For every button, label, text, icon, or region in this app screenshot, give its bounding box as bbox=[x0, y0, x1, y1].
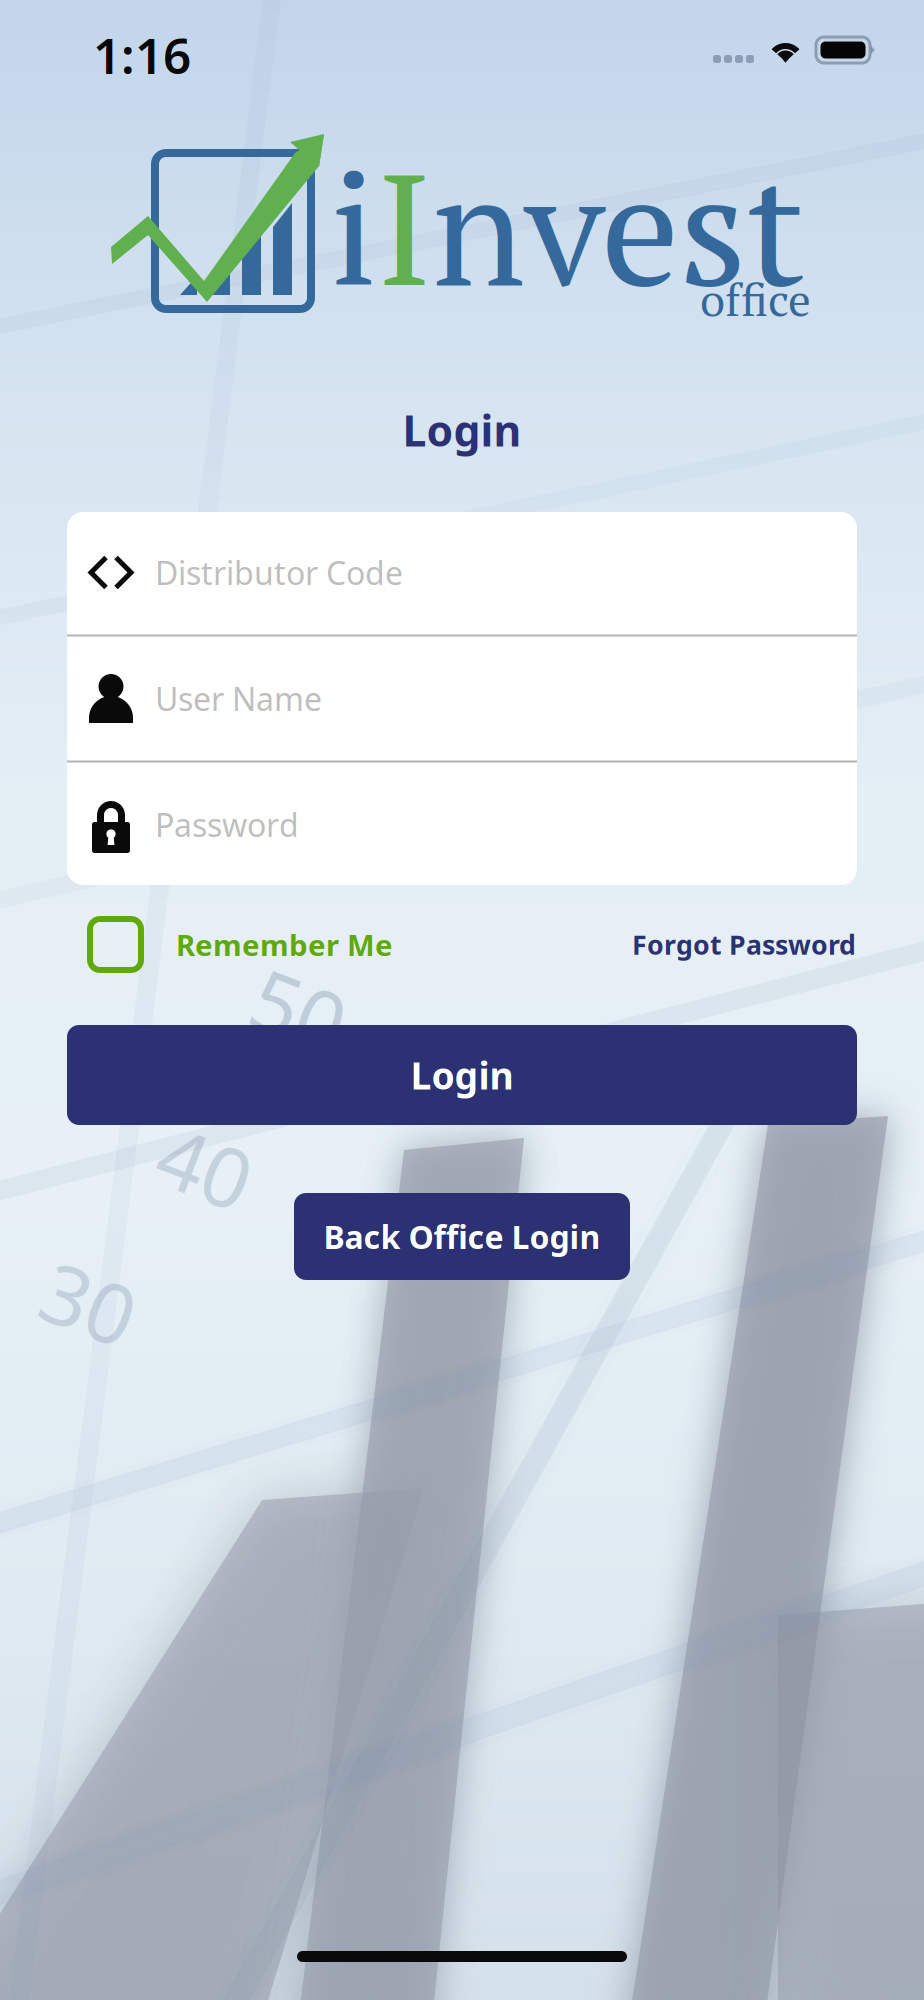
button[interactable]: User Name bbox=[67, 636, 857, 760]
staticText: Login bbox=[410, 1050, 513, 1100]
button[interactable]: Remember Me bbox=[90, 919, 393, 970]
staticText: I bbox=[377, 123, 432, 330]
button[interactable]: Login bbox=[67, 1025, 857, 1125]
staticText: Password bbox=[155, 803, 299, 846]
button[interactable]: Forgot Password bbox=[628, 919, 856, 970]
button[interactable]: Back Office Login bbox=[294, 1193, 630, 1280]
staticText: office bbox=[700, 269, 811, 329]
button[interactable]: Distributor Code bbox=[67, 510, 857, 634]
staticText: Distributor Code bbox=[155, 551, 403, 594]
staticText: Remember Me bbox=[176, 925, 393, 964]
staticText: Forgot Password bbox=[632, 927, 856, 962]
staticText: Back Office Login bbox=[323, 1215, 600, 1258]
staticText: User Name bbox=[155, 677, 322, 720]
staticText: nvest bbox=[432, 123, 805, 330]
staticText: Login bbox=[402, 402, 521, 458]
staticText: 1:16 bbox=[93, 22, 191, 87]
staticText: 40 bbox=[158, 1112, 252, 1222]
button[interactable]: Password bbox=[67, 762, 857, 886]
staticText: i bbox=[330, 123, 377, 330]
staticText: 50 bbox=[252, 955, 346, 1065]
staticText: 30 bbox=[42, 1248, 136, 1358]
